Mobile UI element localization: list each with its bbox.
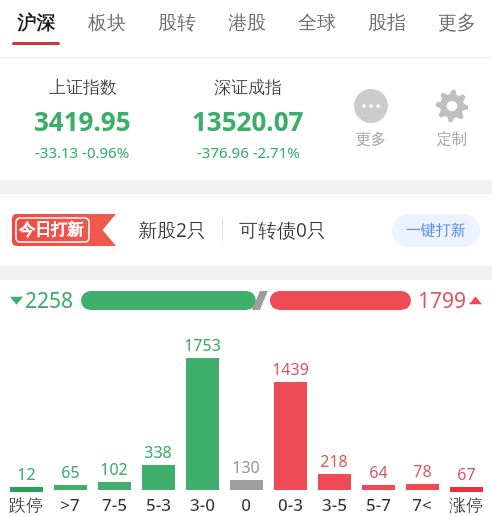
button[interactable]: 67 (444, 336, 488, 516)
staticText: 102 (100, 458, 128, 480)
staticText: -33.13 -0.96% (35, 142, 130, 162)
staticText: 深证成指 (214, 77, 282, 98)
staticText: 3419.95 (34, 103, 131, 138)
button[interactable]: 今日打新 (12, 214, 116, 246)
button[interactable]: 定制 (411, 89, 492, 149)
staticText: 一键打新 (406, 221, 466, 240)
staticText: 板块 (88, 11, 126, 35)
staticText: 港股 (228, 11, 266, 35)
button[interactable]: 102 (92, 334, 136, 516)
button[interactable]: 股指 (352, 0, 422, 42)
staticText: 338 (144, 441, 172, 463)
button[interactable]: 130 (224, 334, 268, 516)
staticText: 可转债0只 (239, 217, 326, 243)
staticText: 1799 (418, 286, 467, 315)
staticText: 13520.07 (192, 103, 304, 138)
button[interactable]: 1439 (268, 334, 312, 516)
button[interactable]: 65 (48, 334, 92, 516)
staticText: 130 (232, 456, 260, 478)
staticText: 0 (241, 493, 251, 516)
staticText: 12 (17, 463, 36, 485)
button[interactable]: 股转 (142, 0, 212, 42)
staticText: >7 (60, 493, 80, 516)
staticText: 3-5 (322, 493, 347, 516)
staticText: 涨停 (449, 495, 483, 516)
staticText: 跌停 (9, 495, 43, 516)
staticText: 沪深 (17, 11, 55, 35)
staticText: 65 (61, 461, 80, 483)
button[interactable]: 218 (312, 334, 356, 516)
button[interactable]: 港股 (212, 0, 282, 42)
staticText: 上证指数 (49, 77, 117, 98)
button[interactable]: 一键打新 (392, 214, 480, 247)
staticText: 1439 (272, 358, 309, 380)
button[interactable]: 全球 (282, 0, 352, 42)
button[interactable]: 78 (400, 334, 444, 516)
staticText: 5-3 (146, 493, 171, 516)
staticText: 0-3 (278, 493, 303, 516)
button[interactable]: 上证指数 (0, 77, 165, 162)
button[interactable]: 可转债0只 (239, 217, 326, 243)
button[interactable]: 更多 (330, 89, 411, 149)
button[interactable]: 338 (136, 334, 180, 516)
staticText: 1753 (184, 334, 221, 356)
staticText: 股转 (158, 11, 196, 35)
staticText: 今日打新 (19, 220, 83, 240)
staticText: 7< (412, 493, 432, 516)
staticText: 定制 (437, 130, 467, 149)
button[interactable]: 12 (4, 336, 48, 516)
staticText: 新股2只 (138, 217, 206, 243)
staticText: 2258 (25, 286, 74, 315)
staticText: 3-0 (190, 493, 215, 516)
button[interactable]: 沪深 (0, 0, 71, 45)
staticText: 67 (457, 463, 476, 485)
staticText: 更多 (438, 11, 476, 35)
staticText: 5-7 (366, 493, 391, 516)
staticText: 78 (413, 460, 432, 482)
staticText: 64 (369, 461, 388, 483)
staticText: 全球 (298, 11, 336, 35)
staticText: 更多 (356, 130, 386, 149)
button[interactable]: 更多 (422, 0, 492, 42)
button[interactable]: 64 (356, 334, 400, 516)
button[interactable]: 深证成指 (165, 77, 330, 162)
button[interactable]: 板块 (71, 0, 142, 42)
staticText: 218 (320, 450, 348, 472)
staticText: -376.96 -2.71% (197, 142, 300, 162)
staticText: 股指 (368, 11, 406, 35)
button[interactable]: 新股2只 (138, 217, 206, 243)
button[interactable]: 1753 (180, 334, 224, 516)
staticText: 7-5 (102, 493, 127, 516)
